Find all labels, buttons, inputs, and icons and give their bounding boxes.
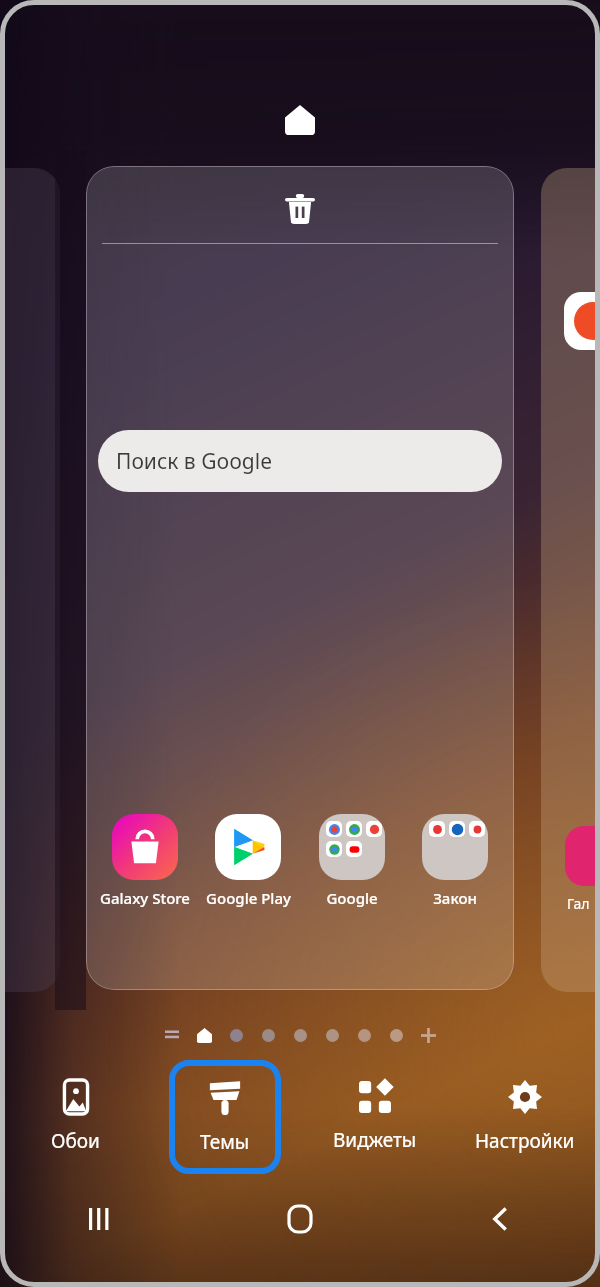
button[interactable]: Google	[302, 814, 402, 908]
staticText: Поиск в Google	[116, 447, 273, 476]
staticText: Обои	[51, 1128, 100, 1154]
staticText: Google Play	[206, 888, 291, 908]
button[interactable]: Remove page	[278, 187, 322, 231]
button[interactable]: Galaxy Store	[95, 814, 195, 908]
button[interactable]: Настройки	[469, 1060, 581, 1174]
button[interactable]: Google Play	[198, 814, 298, 908]
button[interactable]: Обои	[19, 1060, 131, 1174]
button[interactable]	[227, 1026, 245, 1044]
button[interactable]: Main page	[195, 1026, 213, 1044]
staticText: Виджеты	[333, 1127, 417, 1153]
staticText: Настройки	[475, 1128, 575, 1154]
button[interactable]: Home page	[283, 103, 317, 137]
button[interactable]: All pages	[163, 1026, 181, 1044]
button[interactable]: Recents	[0, 1189, 200, 1249]
button[interactable]: Закон	[405, 814, 505, 908]
button[interactable]	[291, 1026, 309, 1044]
staticText: Гал	[567, 894, 590, 913]
button[interactable]: Гал	[541, 168, 600, 992]
button[interactable]	[259, 1026, 277, 1044]
button[interactable]: Виджеты	[319, 1060, 431, 1174]
button[interactable]: Back	[400, 1189, 600, 1249]
button[interactable]: Поиск в Google	[98, 430, 502, 492]
button[interactable]	[0, 168, 60, 992]
button[interactable]: Home	[200, 1189, 400, 1249]
staticText: Закон	[433, 888, 477, 908]
button[interactable]	[355, 1026, 373, 1044]
button[interactable]: Add page	[419, 1026, 437, 1044]
button[interactable]	[323, 1026, 341, 1044]
staticText: Galaxy Store	[100, 888, 190, 908]
button[interactable]	[387, 1026, 405, 1044]
staticText: Темы	[200, 1129, 250, 1155]
staticText: Google	[326, 888, 378, 908]
button[interactable]: Темы	[169, 1060, 281, 1174]
